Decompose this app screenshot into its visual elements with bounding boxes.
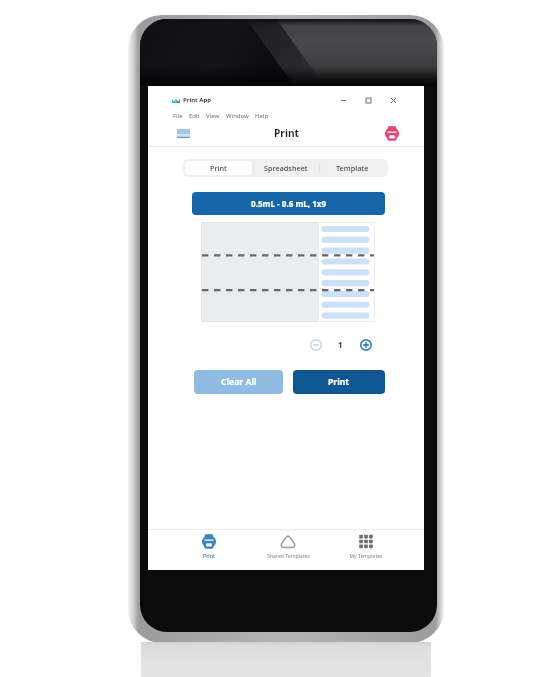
button[interactable]: Close bbox=[386, 93, 400, 107]
button[interactable]: Clear All bbox=[194, 370, 283, 394]
button[interactable]: Help bbox=[252, 112, 272, 120]
button[interactable]: Print bbox=[293, 370, 385, 394]
button[interactable]: View bbox=[203, 112, 223, 120]
staticText: Help bbox=[255, 112, 269, 120]
button[interactable]: Template bbox=[319, 161, 386, 175]
staticText: Edit bbox=[189, 112, 200, 120]
button[interactable]: Print bbox=[172, 530, 246, 570]
button[interactable]: 0.5mL - 0.6 mL, 1x9 bbox=[192, 192, 385, 215]
staticText: Clear All bbox=[221, 376, 257, 388]
staticText: Print bbox=[210, 163, 227, 173]
button[interactable]: Print bbox=[185, 161, 252, 175]
staticText: File bbox=[173, 112, 183, 120]
staticText: Print App bbox=[183, 96, 212, 104]
staticText: View bbox=[206, 112, 220, 120]
button[interactable]: Spreadsheet bbox=[252, 161, 319, 175]
button[interactable]: My Templates bbox=[329, 530, 403, 570]
button[interactable]: Increase bbox=[357, 336, 374, 353]
staticText: Print bbox=[274, 126, 299, 140]
staticText: Window bbox=[226, 112, 249, 120]
button[interactable]: Window bbox=[223, 112, 252, 120]
staticText: My Templates bbox=[349, 553, 383, 560]
staticText: Print bbox=[328, 376, 350, 388]
button[interactable]: Decrease bbox=[307, 336, 324, 353]
button[interactable]: Menu bbox=[173, 123, 193, 143]
staticText: 1 bbox=[338, 339, 343, 350]
button[interactable]: Maximize bbox=[361, 93, 375, 107]
button[interactable]: File bbox=[170, 112, 186, 120]
staticText: Template bbox=[336, 163, 369, 173]
staticText: Spreadsheet bbox=[264, 163, 308, 173]
button[interactable]: Shared Templates bbox=[251, 530, 325, 570]
button[interactable]: Printer bbox=[382, 123, 402, 143]
button[interactable]: Minimize bbox=[336, 93, 350, 107]
staticText: Shared Templates bbox=[267, 553, 310, 560]
button[interactable]: Edit bbox=[186, 112, 203, 120]
staticText: Print bbox=[203, 553, 215, 560]
staticText: 0.5mL - 0.6 mL, 1x9 bbox=[251, 198, 327, 209]
